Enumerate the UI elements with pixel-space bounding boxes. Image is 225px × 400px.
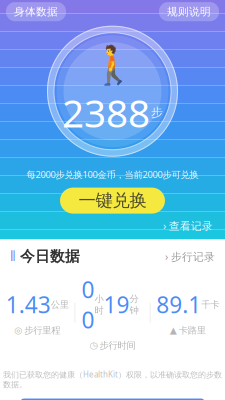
staticText: 89.1 bbox=[156, 289, 201, 320]
button[interactable]: 一键兑换 bbox=[60, 188, 165, 214]
staticText: 一键兑换 bbox=[78, 190, 146, 211]
button[interactable]: 邀请好友 bbox=[20, 399, 205, 400]
staticText: ◎ bbox=[14, 325, 22, 336]
staticText: 1.43 bbox=[6, 289, 51, 320]
staticText: 小时 bbox=[94, 293, 103, 316]
staticText: ⫼ bbox=[10, 251, 16, 262]
staticText: 卡路里 bbox=[179, 325, 206, 336]
staticText: 我们已获取您的健康（HealthKit）权限，以准确读取您的步数数据。 bbox=[3, 369, 222, 390]
staticText: 步 bbox=[151, 105, 163, 120]
button[interactable]: 身体数据 bbox=[6, 2, 66, 21]
staticText: 公里 bbox=[51, 299, 69, 310]
staticText: 步行时间 bbox=[99, 340, 135, 351]
staticText: › 查看记录 bbox=[163, 219, 213, 233]
staticText: 规则说明 bbox=[167, 5, 211, 18]
button[interactable]: › 步行记录 bbox=[165, 249, 215, 264]
staticText: 身体数据 bbox=[14, 5, 58, 18]
staticText: 每2000步兑换100金币，当前2000步可兑换 bbox=[26, 168, 198, 181]
staticText: 今日数据 bbox=[20, 247, 80, 265]
button[interactable]: 规则说明 bbox=[159, 2, 219, 21]
staticText: 步行里程 bbox=[24, 325, 60, 336]
staticText: 19 bbox=[103, 289, 129, 320]
staticText: 2388 bbox=[62, 87, 150, 138]
staticText: 00 bbox=[81, 274, 94, 335]
staticText: 分钟 bbox=[129, 293, 138, 316]
button[interactable]: › 查看记录 bbox=[163, 219, 213, 233]
staticText: 🚶 bbox=[89, 44, 135, 87]
staticText: › 步行记录 bbox=[165, 249, 215, 264]
staticText: ◷ bbox=[89, 340, 97, 351]
staticText: ▲ bbox=[170, 325, 177, 336]
staticText: 千卡 bbox=[201, 299, 219, 310]
